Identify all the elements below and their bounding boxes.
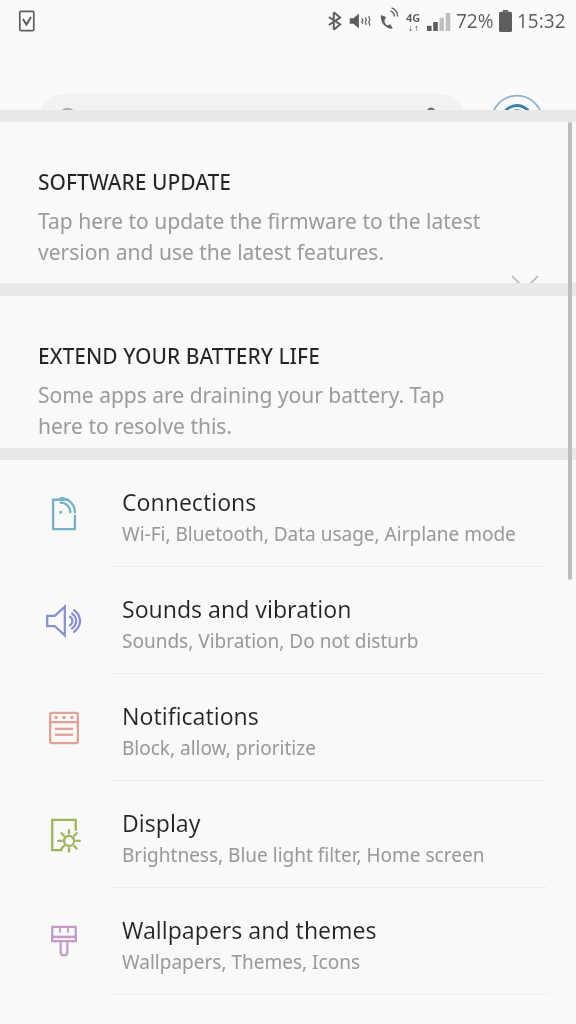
button[interactable]: Notifications <box>0 674 576 781</box>
button[interactable]: Connections <box>0 460 576 567</box>
staticText: Sounds and vibration <box>122 593 352 624</box>
staticText: Wallpapers, Themes, Icons <box>122 949 361 975</box>
button[interactable]: Search <box>38 94 466 144</box>
staticText: 72% <box>456 8 494 34</box>
staticText: Sounds, Vibration, Do not disturb <box>122 628 419 654</box>
staticText: Wi-Fi, Bluetooth, Data usage, Airplane m… <box>122 521 516 547</box>
staticText: Connections <box>122 486 257 517</box>
button[interactable]: Dismiss <box>504 268 546 310</box>
staticText: Some apps are draining your battery. Tap… <box>38 381 445 440</box>
staticText: 15:32 <box>517 8 566 34</box>
button[interactable]: Samsung account <box>490 94 544 148</box>
staticText: Block, allow, prioritize <box>122 735 316 761</box>
staticText: Search <box>96 105 163 134</box>
staticText: ↓↑ <box>408 25 420 33</box>
staticText: Wallpapers and themes <box>122 914 377 945</box>
staticText: EXTEND YOUR BATTERY LIFE <box>38 342 320 371</box>
button[interactable]: Dismiss <box>504 442 546 484</box>
button[interactable]: Wallpapers and themes <box>0 888 576 995</box>
button[interactable]: Display <box>0 781 576 888</box>
staticText: Tap here to update the firmware to the l… <box>38 207 481 266</box>
button[interactable]: EXTEND YOUR BATTERY LIFE <box>0 296 576 448</box>
button[interactable]: Sounds and vibration <box>0 567 576 674</box>
button[interactable]: SOFTWARE UPDATE <box>0 122 576 283</box>
staticText: Brightness, Blue light filter, Home scre… <box>122 842 485 868</box>
staticText: Display <box>122 807 201 838</box>
button[interactable]: Voice search <box>416 104 446 134</box>
staticText: SOFTWARE UPDATE <box>38 168 232 197</box>
staticText: Notifications <box>122 700 259 731</box>
staticText: 4G <box>406 10 421 25</box>
